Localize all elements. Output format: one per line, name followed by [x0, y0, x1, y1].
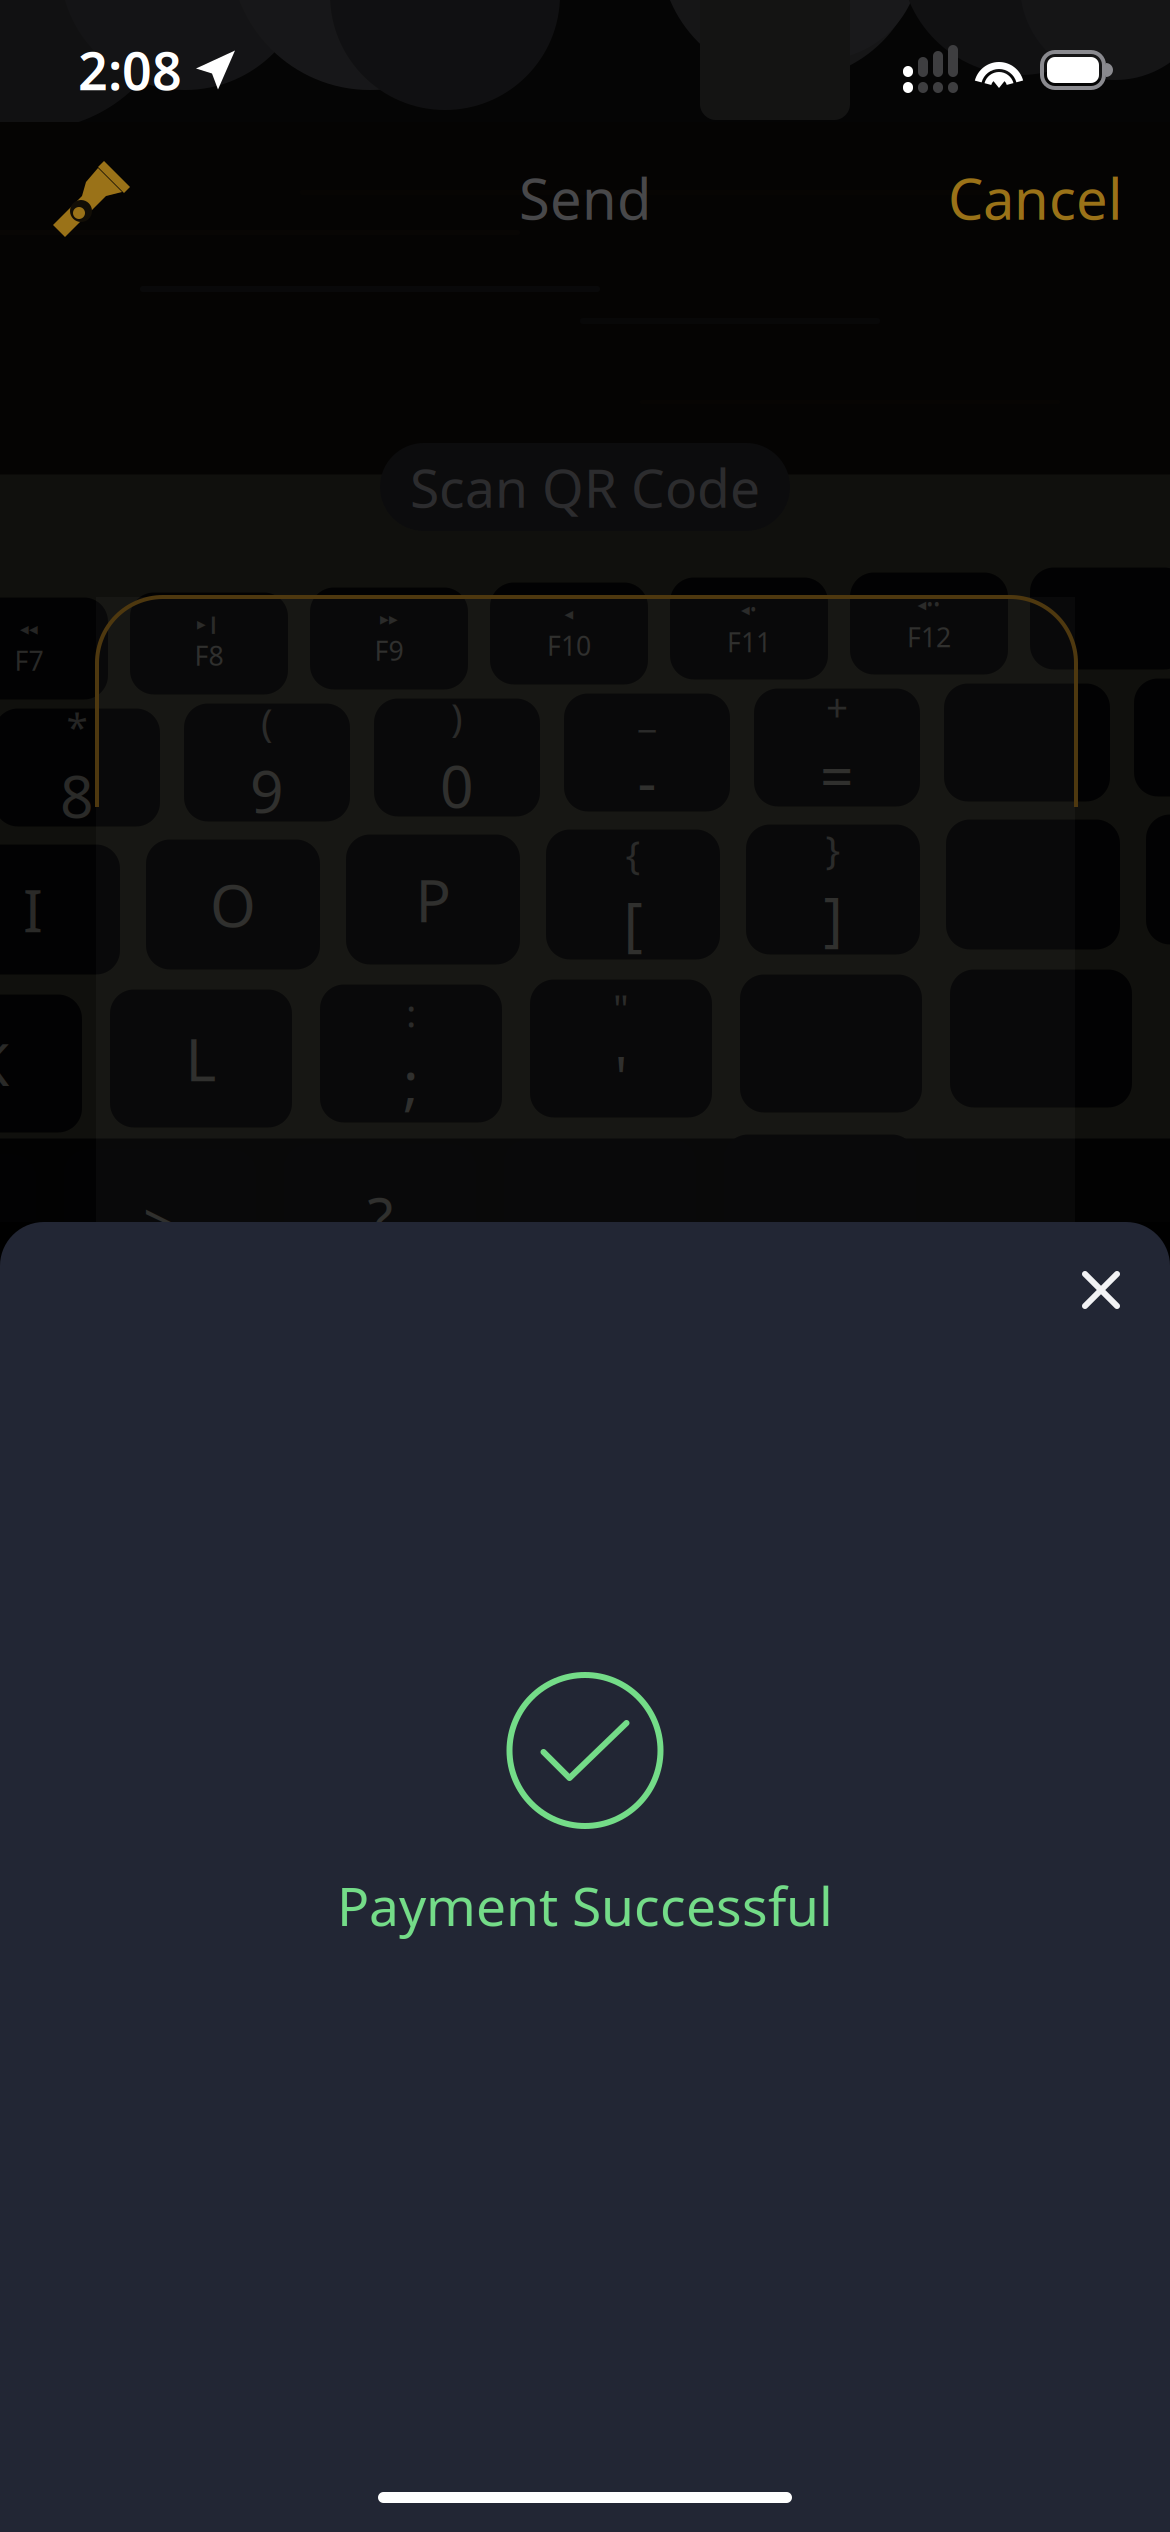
staticText: F9: [374, 633, 403, 668]
staticText: O: [210, 865, 256, 943]
staticText: ◂◂: [20, 619, 38, 639]
staticText: }: [825, 823, 840, 874]
staticText: (: [261, 696, 273, 747]
staticText: L: [185, 1019, 216, 1097]
staticText: :: [406, 987, 416, 1038]
staticText: ◂•: [741, 597, 757, 620]
button[interactable]: Send: [425, 146, 745, 250]
staticText: {: [625, 828, 640, 879]
staticText: -: [637, 741, 656, 819]
staticText: ]: [823, 878, 842, 956]
staticText: Send: [519, 161, 651, 235]
staticText: [: [623, 883, 642, 961]
staticText: ": [613, 982, 629, 1033]
staticText: Payment Successful: [337, 1870, 833, 1941]
staticText: Scan QR Code: [410, 452, 760, 522]
staticText: F7: [14, 643, 43, 678]
staticText: ': [614, 1037, 627, 1115]
staticText: 0: [440, 746, 474, 824]
staticText: 2:08: [78, 35, 182, 105]
staticText: >: [143, 1183, 177, 1261]
staticText: ◂: [564, 604, 573, 624]
staticText: ?: [367, 1178, 392, 1256]
button[interactable]: Cancel: [948, 146, 1170, 250]
staticText: ▸❙: [197, 614, 221, 634]
staticText: +: [826, 681, 848, 732]
button[interactable]: Scan QR Code: [380, 443, 790, 531]
staticText: F8: [194, 638, 223, 673]
staticText: Cancel: [948, 161, 1122, 235]
staticText: ◂••: [917, 592, 940, 615]
staticText: _: [638, 686, 655, 737]
staticText: 8: [60, 756, 94, 834]
staticText: I: [23, 870, 43, 948]
staticText: F12: [907, 619, 951, 655]
staticText: F10: [547, 628, 591, 663]
staticText: ▸▸: [380, 609, 398, 629]
staticText: ): [451, 691, 463, 742]
staticText: P: [415, 860, 450, 938]
staticText: ;: [403, 1042, 419, 1120]
staticText: K: [0, 1024, 9, 1102]
button[interactable]: Close: [1056, 1245, 1146, 1335]
staticText: *: [66, 701, 87, 752]
staticText: 9: [250, 751, 284, 829]
button[interactable]: Flashlight: [0, 156, 162, 240]
staticText: F11: [727, 624, 771, 660]
staticText: =: [820, 736, 854, 814]
